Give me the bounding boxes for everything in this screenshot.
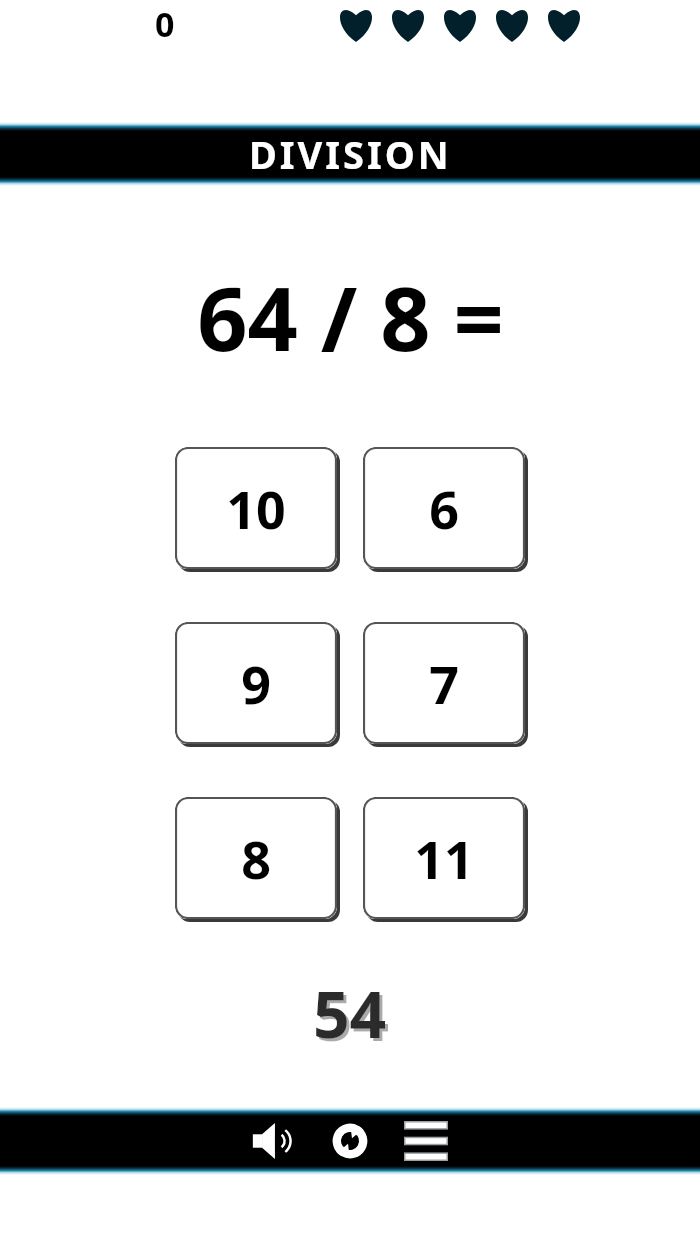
staticText: 64 / 8 = <box>197 257 504 377</box>
staticText: 7 <box>429 648 459 719</box>
button[interactable]: 8 <box>175 797 337 919</box>
staticText: DIVISION <box>249 128 452 180</box>
button[interactable]: Menu <box>397 1112 455 1170</box>
button[interactable]: 9 <box>175 622 337 744</box>
staticText: 6 <box>429 473 459 544</box>
button[interactable]: 7 <box>363 622 525 744</box>
button[interactable]: 11 <box>363 797 525 919</box>
staticText: 54 <box>316 973 390 1060</box>
staticText: 54 <box>313 970 387 1057</box>
staticText: 10 <box>226 473 286 544</box>
button[interactable]: 10 <box>175 447 337 569</box>
staticText: 11 <box>414 823 474 894</box>
button[interactable]: 6 <box>363 447 525 569</box>
staticText: 8 <box>241 823 271 894</box>
staticText: 9 <box>241 648 271 719</box>
staticText: 0 <box>155 1 175 47</box>
button[interactable]: Sound <box>245 1112 303 1170</box>
button[interactable]: Refresh <box>321 1112 379 1170</box>
